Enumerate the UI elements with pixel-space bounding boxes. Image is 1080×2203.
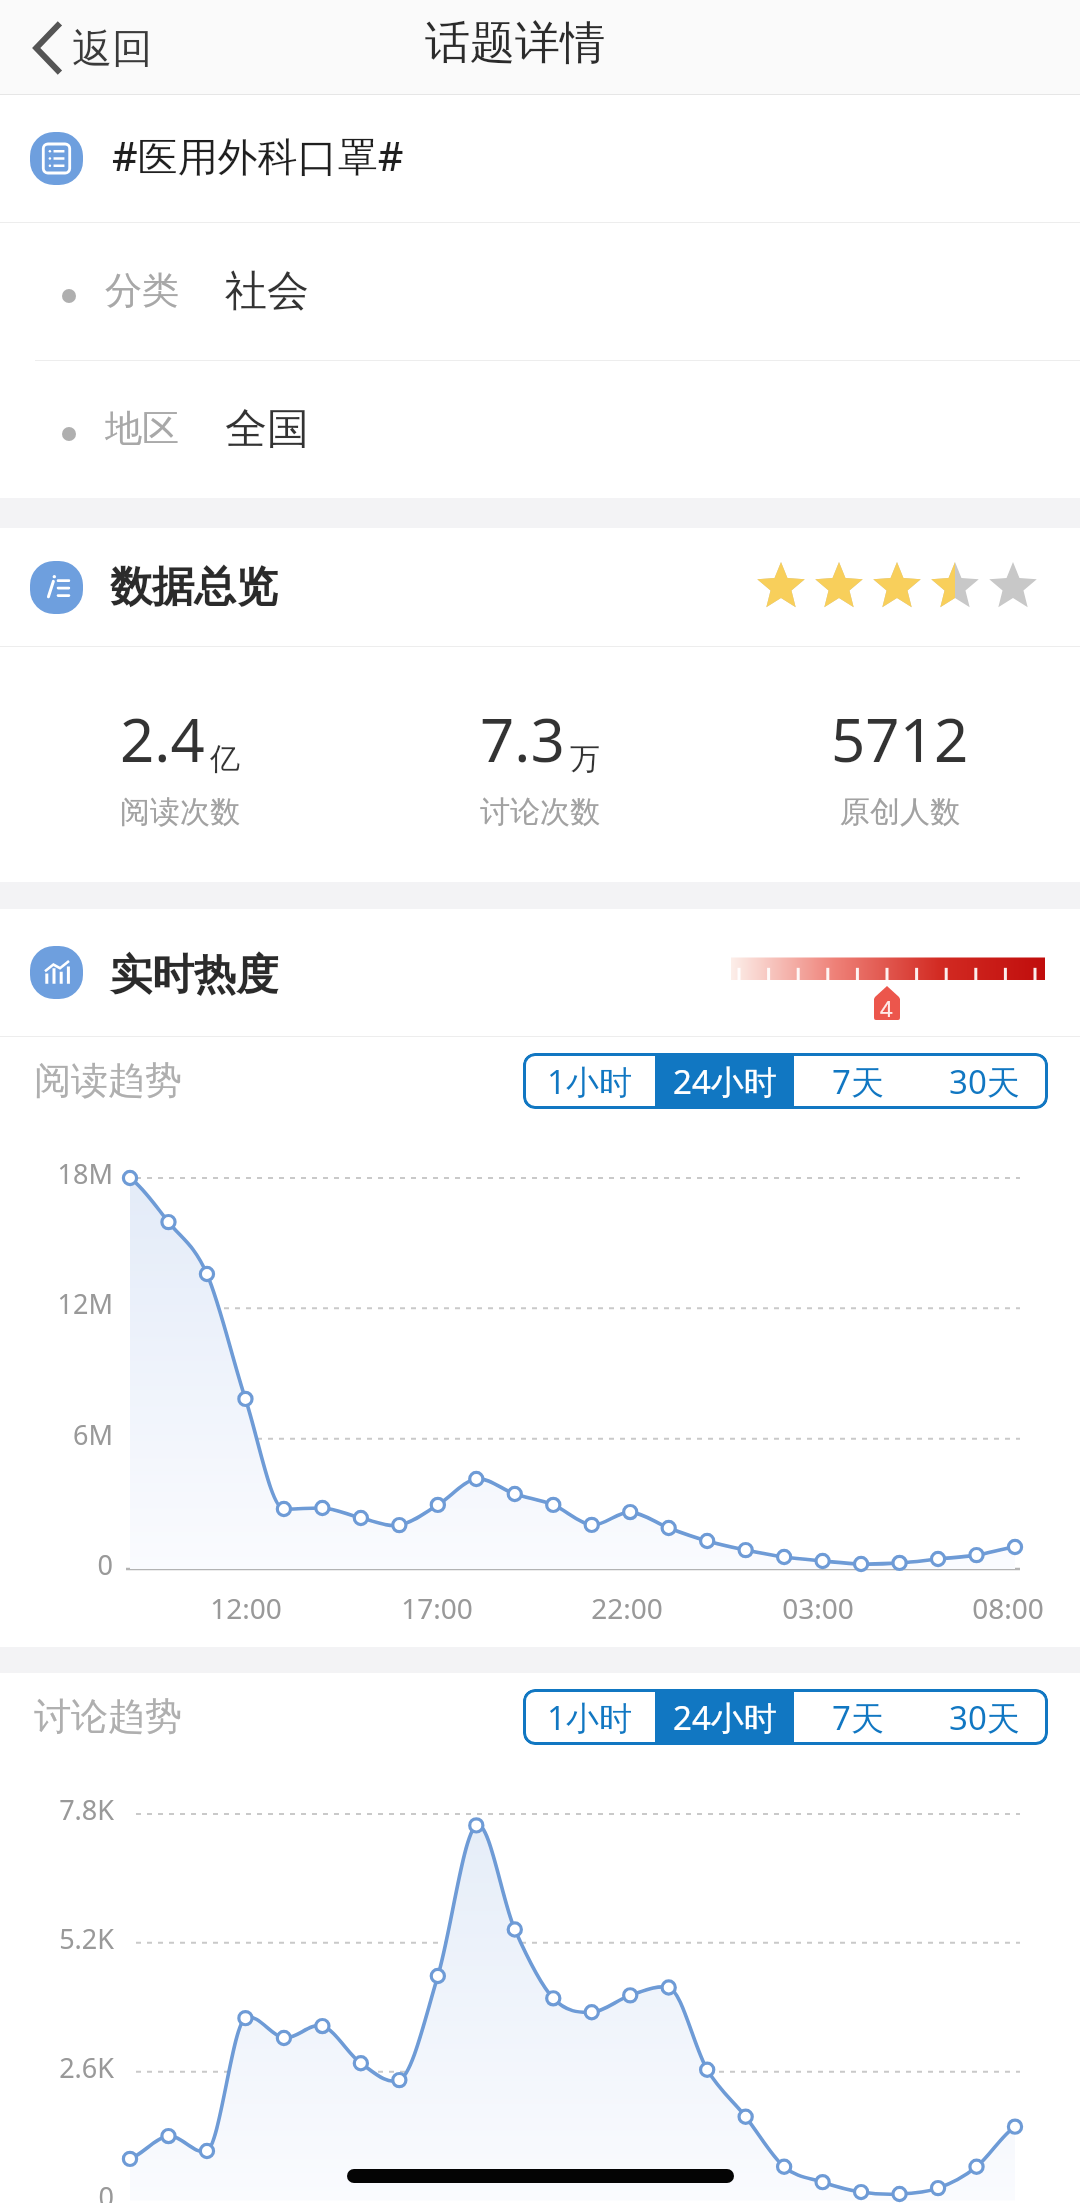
staticText: 7.8K (0, 1791, 114, 1828)
button[interactable]: 1小时 (523, 1053, 655, 1109)
staticText: 1小时 (547, 1059, 632, 1104)
staticText: 地区 (105, 405, 179, 452)
staticText: 5.2K (0, 1920, 114, 1957)
staticText: 12M (0, 1285, 113, 1322)
staticText: 全国 (225, 403, 309, 456)
button[interactable]: 24小时 (655, 1053, 794, 1109)
staticText: 22:00 (567, 1589, 687, 1627)
button[interactable]: 返回 (0, 11, 176, 85)
staticText: 12:00 (186, 1589, 306, 1627)
staticText: 社会 (225, 265, 309, 318)
staticText: 08:00 (948, 1589, 1068, 1627)
staticText: 阅读趋势 (34, 1057, 182, 1104)
staticText: 4 (880, 993, 893, 1023)
staticText: 分类 (105, 267, 179, 314)
button[interactable]: 地区 (0, 361, 1080, 498)
staticText: 实时热度 (110, 949, 278, 1002)
staticText: 数据总览 (110, 561, 278, 614)
staticText: 2.6K (0, 2049, 114, 2086)
staticText: 24小时 (673, 1695, 777, 1740)
staticText: 7.3 (480, 698, 565, 780)
staticText: 阅读次数 (120, 793, 240, 831)
staticText: 0 (0, 2178, 114, 2203)
staticText: 讨论次数 (480, 793, 600, 831)
button[interactable]: 分类 (0, 223, 1080, 360)
staticText: 6M (0, 1416, 113, 1453)
staticText: 24小时 (673, 1059, 777, 1104)
button[interactable]: 1小时 (523, 1689, 655, 1745)
staticText: 30天 (949, 1059, 1020, 1104)
staticText: 返回 (72, 23, 152, 73)
staticText: 03:00 (758, 1589, 878, 1627)
staticText: 1小时 (547, 1695, 632, 1740)
staticText: 0 (0, 1546, 113, 1583)
staticText: 话题详情 (425, 15, 605, 72)
button[interactable]: 7天 (794, 1689, 921, 1745)
staticText: 2.4 (120, 698, 205, 780)
staticText: 5712 (831, 698, 969, 780)
staticText: 7天 (832, 1695, 884, 1740)
staticText: 亿 (210, 740, 240, 778)
button[interactable]: 7天 (794, 1053, 921, 1109)
staticText: #医用外科口罩# (112, 128, 404, 183)
button[interactable]: 30天 (921, 1053, 1048, 1109)
staticText: 17:00 (377, 1589, 497, 1627)
button[interactable]: 24小时 (655, 1689, 794, 1745)
staticText: 原创人数 (840, 793, 960, 831)
staticText: 万 (570, 740, 600, 778)
staticText: 7天 (832, 1059, 884, 1104)
staticText: 讨论趋势 (34, 1693, 182, 1740)
staticText: 30天 (949, 1695, 1020, 1740)
staticText: 18M (0, 1155, 113, 1192)
button[interactable]: 30天 (921, 1689, 1048, 1745)
